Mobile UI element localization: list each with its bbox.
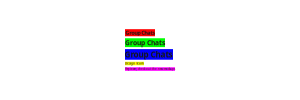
staticText: Group Chats	[125, 38, 165, 47]
staticText: Hey team, check out the new mockups	[125, 67, 175, 71]
staticText: Design Team	[125, 62, 144, 65]
staticText: Group Chats	[125, 49, 173, 60]
staticText: Group Chats	[125, 29, 155, 36]
